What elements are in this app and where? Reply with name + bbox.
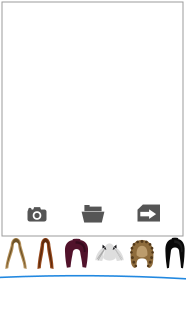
- button[interactable]: Black bob hairstyle: [164, 239, 186, 269]
- button[interactable]: Long straight auburn hairstyle: [34, 239, 57, 269]
- button[interactable]: Take a photo: [21, 203, 53, 223]
- button[interactable]: Curly light brown hairstyle: [128, 239, 156, 269]
- button[interactable]: Burgundy bob hairstyle: [63, 239, 90, 269]
- button[interactable]: Long wavy blonde hairstyle: [4, 239, 28, 269]
- button[interactable]: Silver pigtails hairstyle: [95, 239, 124, 269]
- button[interactable]: Save and share: [133, 203, 165, 223]
- button[interactable]: Open from gallery: [77, 203, 109, 223]
